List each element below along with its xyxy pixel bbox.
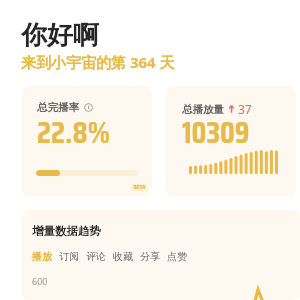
staticText: 总完播率 bbox=[37, 101, 79, 114]
staticText: 分享 bbox=[140, 250, 160, 263]
other: Increase bbox=[229, 105, 234, 113]
button[interactable]: 分享 bbox=[140, 250, 167, 263]
other: Info bbox=[84, 103, 93, 112]
staticText: 点赞 bbox=[167, 250, 187, 263]
staticText: 收藏 bbox=[113, 250, 133, 263]
button[interactable]: 总播放量 bbox=[166, 86, 296, 196]
staticText: 来到小宇宙的第 364 天 bbox=[21, 52, 175, 72]
staticText: 增量数据趋势 bbox=[32, 224, 101, 238]
button[interactable]: 收藏 bbox=[113, 250, 140, 263]
staticText: 37 bbox=[238, 101, 252, 117]
staticText: 播放 bbox=[32, 250, 52, 263]
staticText: 10309 bbox=[182, 108, 250, 157]
staticText: 22.8% bbox=[37, 108, 111, 157]
staticText: 评论 bbox=[86, 250, 106, 263]
button[interactable]: 评论 bbox=[86, 250, 113, 263]
button[interactable]: 总完播率 bbox=[22, 86, 152, 196]
button[interactable]: 点赞 bbox=[167, 250, 187, 263]
staticText: 600 bbox=[32, 275, 48, 287]
staticText: 总播放量 bbox=[182, 103, 224, 116]
button[interactable]: 播放 bbox=[32, 250, 59, 263]
staticText: 你好啊 bbox=[21, 19, 99, 52]
staticText: BETA bbox=[133, 184, 146, 191]
button[interactable]: 订阅 bbox=[59, 250, 86, 263]
staticText: 订阅 bbox=[59, 250, 79, 263]
